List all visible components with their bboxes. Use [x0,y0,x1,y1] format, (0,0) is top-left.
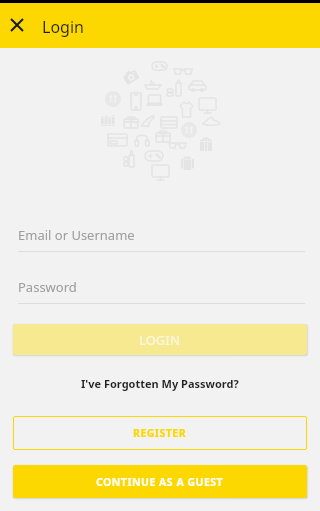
staticText: Password [18,278,77,296]
staticText: Email or Username [18,226,135,244]
button[interactable]: I've Forgotten My Password? [75,372,245,395]
staticText: Login [42,16,84,38]
button[interactable]: LOGIN [13,324,307,355]
button[interactable]: Close [0,8,34,42]
staticText: REGISTER [133,426,187,440]
staticText: I've Forgotten My Password? [81,376,239,391]
button[interactable]: REGISTER [13,416,307,450]
staticText: CONTINUE AS A GUEST [96,475,224,489]
staticText: LOGIN [139,331,181,349]
button[interactable]: CONTINUE AS A GUEST [13,465,307,498]
